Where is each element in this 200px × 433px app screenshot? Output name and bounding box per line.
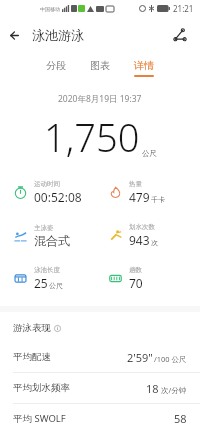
button[interactable]: Back (0, 20, 30, 50)
staticText: 次/分钟 (161, 385, 187, 395)
button[interactable]: 分段 (46, 59, 66, 77)
staticText: 热量 (129, 180, 142, 188)
staticText: 趟数 (129, 266, 142, 274)
staticText: 图表 (90, 59, 110, 72)
staticText: 分段 (46, 59, 66, 72)
staticText: 18 (146, 381, 159, 396)
button[interactable]: 平均配速 (0, 342, 200, 372)
staticText: 千卡 (151, 195, 165, 204)
staticText: 泳池游泳 (32, 27, 84, 43)
staticText: 泳池长度 (34, 266, 60, 274)
button[interactable]: 平均 SWOLF (0, 404, 200, 433)
staticText: 70 (129, 275, 143, 291)
staticText: 2020年8月19日 19:37 (58, 93, 142, 105)
staticText: 运动时间 (34, 180, 60, 188)
staticText: 公尺 (49, 281, 63, 290)
staticText: 平均 SWOLF (13, 412, 66, 425)
button[interactable]: 平均划水频率 (0, 373, 200, 403)
staticText: 943 (129, 232, 150, 248)
staticText: 游泳表现 (13, 322, 51, 334)
staticText: 中国移动 (40, 6, 60, 12)
staticText: 次 (151, 238, 158, 247)
button[interactable]: 详情 (134, 59, 154, 77)
staticText: 混合式 (34, 233, 70, 248)
staticText: 2'59" (127, 350, 153, 365)
staticText: 58 (174, 411, 187, 426)
staticText: 00:52:08 (34, 189, 82, 205)
staticText: 479 (129, 189, 150, 205)
staticText: 公尺 (142, 149, 157, 158)
button[interactable]: 图表 (90, 59, 110, 77)
staticText: /100 公尺 (154, 354, 187, 364)
staticText: 25 (34, 275, 48, 291)
staticText: 1,750 (44, 111, 140, 163)
staticText: 划水次数 (129, 223, 155, 231)
staticText: 主泳姿 (34, 224, 54, 232)
staticText: 详情 (134, 59, 154, 72)
staticText: 平均划水频率 (13, 382, 70, 394)
button[interactable]: Share (164, 19, 196, 51)
staticText: 平均配速 (13, 351, 51, 363)
staticText: 21:21 (173, 3, 194, 14)
